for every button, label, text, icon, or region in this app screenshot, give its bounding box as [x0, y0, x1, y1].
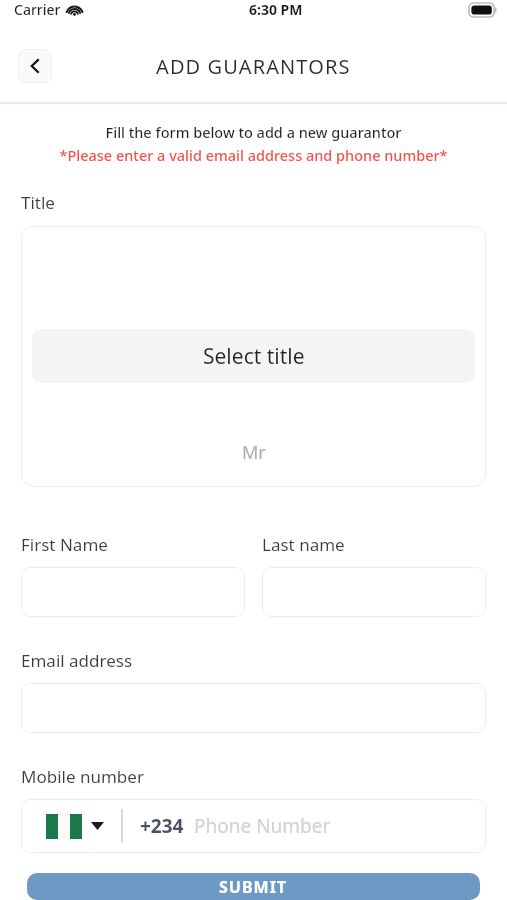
button[interactable]: +234 [21, 799, 486, 853]
staticText: Fill the form below to add a new guarant… [0, 122, 507, 142]
button[interactable] [21, 567, 245, 617]
staticText: Carrier [14, 0, 61, 19]
staticText: *Please enter a valid email address and … [0, 145, 507, 165]
staticText: Title [21, 191, 55, 214]
button[interactable]: SUBMIT [27, 873, 480, 900]
button[interactable] [262, 567, 486, 617]
staticText: Email address [21, 649, 133, 672]
staticText: +234 [140, 813, 184, 839]
staticText: SUBMIT [219, 876, 288, 898]
staticText: Phone Number [194, 813, 331, 839]
staticText: First Name [21, 533, 108, 556]
staticText: Mobile number [21, 765, 144, 788]
staticText: Last name [262, 533, 345, 556]
staticText: Mrs [240, 480, 267, 487]
button[interactable]: Back [18, 49, 52, 83]
button[interactable]: Select title [21, 226, 486, 487]
staticText: Select title [203, 342, 305, 371]
staticText: ADD GUARANTORS [156, 53, 351, 80]
staticText: Mr [242, 440, 266, 465]
staticText: 6:30 PM [249, 0, 303, 19]
button[interactable] [21, 683, 486, 733]
